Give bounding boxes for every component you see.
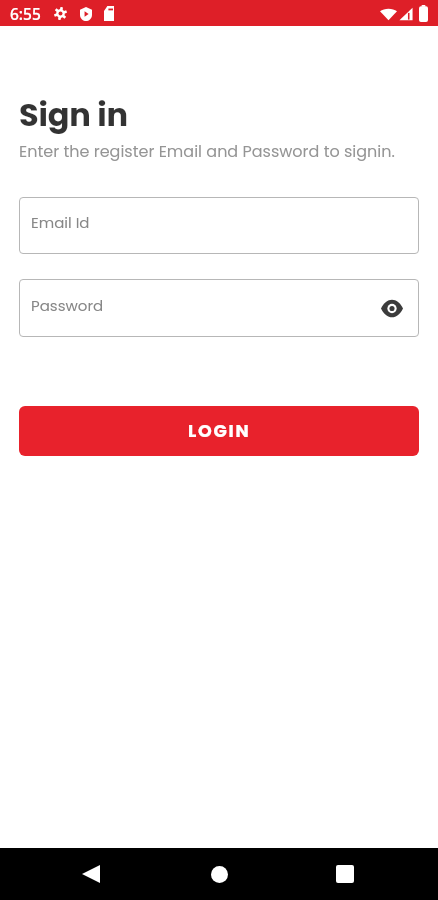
button[interactable]: Home [195, 850, 243, 898]
button[interactable]: Email Id [19, 197, 419, 254]
button[interactable]: Password [19, 279, 419, 337]
button[interactable]: Show password [377, 293, 407, 323]
button[interactable]: Recents [321, 850, 369, 898]
staticText: LOGIN [188, 419, 251, 444]
staticText: 6:55 [10, 3, 41, 24]
staticText: Password [31, 295, 104, 316]
staticText: Enter the register Email and Password to… [19, 140, 395, 162]
button[interactable]: Back [67, 850, 115, 898]
staticText: Sign in [19, 92, 128, 137]
staticText: Email Id [31, 212, 90, 233]
button[interactable]: LOGIN [19, 406, 419, 456]
